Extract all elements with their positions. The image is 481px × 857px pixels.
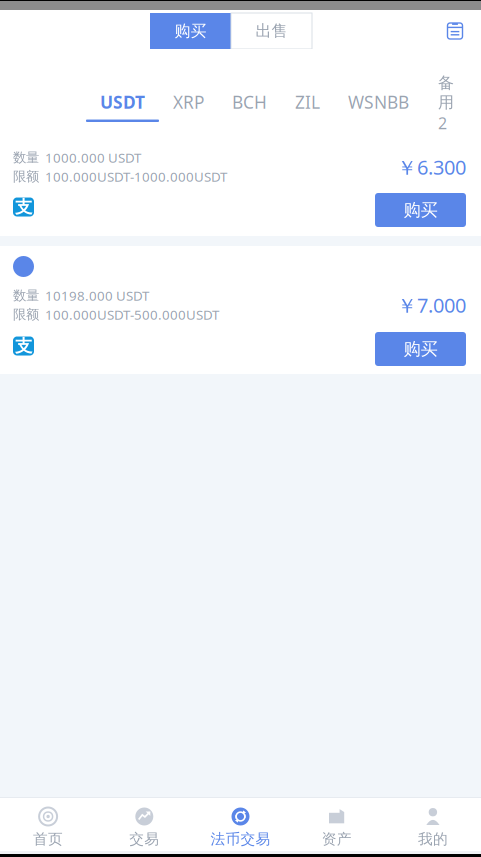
- staticText: ￥6.300: [397, 154, 466, 180]
- button[interactable]: 购买: [150, 13, 231, 49]
- button[interactable]: 我的订单: [447, 22, 463, 39]
- staticText: 购买: [174, 21, 206, 41]
- staticText: ￥7.000: [397, 292, 466, 318]
- staticText: 支: [15, 335, 32, 357]
- staticText: 交易: [129, 830, 159, 848]
- staticText: 限额: [13, 168, 39, 185]
- staticText: ZIL: [295, 90, 320, 113]
- button[interactable]: 购买: [375, 332, 466, 366]
- button[interactable]: 备用2: [438, 49, 454, 135]
- button[interactable]: 法币交易: [192, 798, 289, 851]
- staticText: 数量: [13, 287, 39, 304]
- staticText: 出售: [255, 21, 287, 41]
- button[interactable]: USDT: [86, 49, 159, 135]
- staticText: 100.000USDT-1000.000USDT: [45, 168, 227, 185]
- staticText: 资产: [322, 830, 352, 848]
- staticText: 法币交易: [210, 830, 270, 848]
- button[interactable]: WSNBB: [334, 49, 423, 135]
- staticText: 购买: [403, 199, 437, 221]
- staticText: 支: [15, 196, 32, 218]
- button[interactable]: ZIL: [281, 49, 334, 135]
- button[interactable]: BCH: [218, 49, 281, 135]
- staticText: XRP: [173, 90, 204, 113]
- staticText: WSNBB: [348, 90, 409, 113]
- staticText: 数量: [13, 149, 39, 166]
- staticText: 备用2: [438, 73, 454, 134]
- staticText: 10198.000 USDT: [45, 287, 149, 304]
- button[interactable]: 首页: [0, 798, 96, 851]
- button[interactable]: 我的: [385, 798, 481, 851]
- button[interactable]: 购买: [375, 193, 466, 227]
- staticText: 100.000USDT-500.000USDT: [45, 306, 219, 323]
- staticText: 限额: [13, 306, 39, 323]
- button[interactable]: XRP: [159, 49, 218, 135]
- staticText: 购买: [403, 338, 437, 360]
- staticText: 首页: [33, 830, 63, 848]
- button[interactable]: 资产: [289, 798, 385, 851]
- staticText: USDT: [100, 90, 145, 113]
- button[interactable]: 交易: [96, 798, 192, 851]
- staticText: 我的: [418, 830, 448, 848]
- staticText: 1000.000 USDT: [45, 149, 141, 166]
- staticText: BCH: [232, 90, 267, 113]
- button[interactable]: 出售: [231, 13, 312, 49]
